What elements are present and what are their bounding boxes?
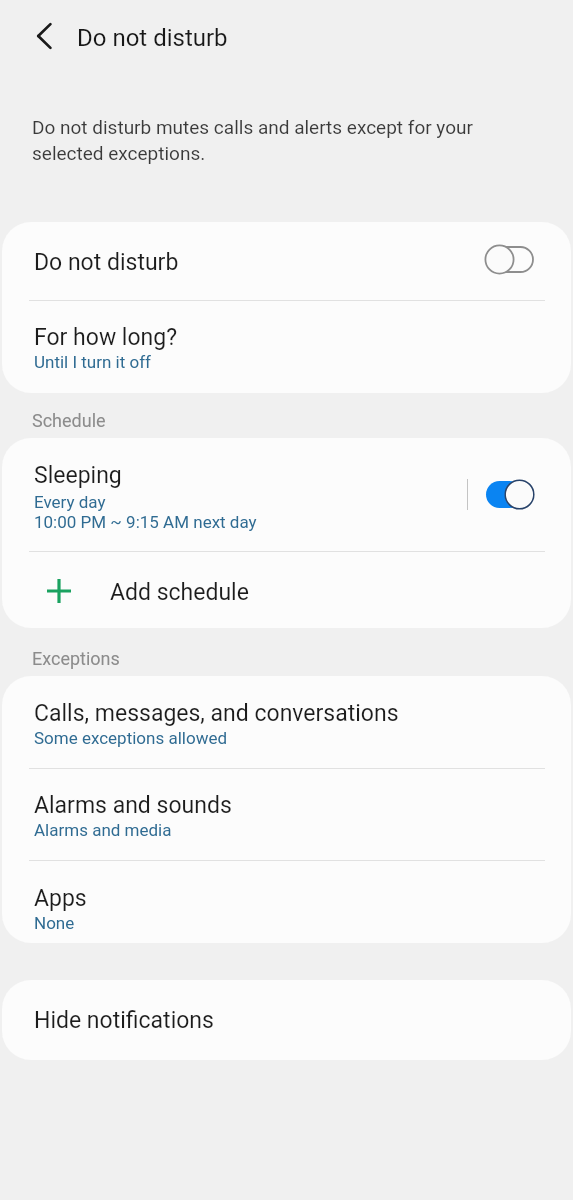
staticText: Sleeping [34, 462, 122, 489]
staticText: For how long? [34, 324, 178, 351]
button[interactable]: Calls, messages, and conversations [2, 676, 571, 768]
staticText: Hide notifications [34, 1007, 214, 1034]
staticText: Do not disturb mutes calls and alerts ex… [32, 116, 533, 164]
staticText: Do not disturb [77, 24, 228, 52]
button[interactable]: For how long? [2, 301, 571, 393]
staticText: Every day [34, 492, 106, 512]
staticText: Until I turn it off [34, 352, 152, 372]
button[interactable]: Do not disturb [2, 222, 571, 300]
staticText: Apps [34, 885, 87, 912]
button[interactable]: Hide notifications [2, 980, 571, 1060]
button[interactable]: Do not disturb, off [484, 244, 535, 275]
staticText: Do not disturb [34, 249, 179, 276]
button[interactable]: Sleeping schedule, on [484, 479, 535, 510]
button[interactable]: Sleeping [2, 438, 571, 551]
staticText: Alarms and sounds [34, 792, 232, 819]
staticText: Exceptions [32, 648, 120, 669]
staticText: Calls, messages, and conversations [34, 700, 399, 727]
button[interactable]: Apps [2, 861, 571, 943]
button[interactable]: Add schedule [2, 552, 571, 628]
button[interactable]: Alarms and sounds [2, 769, 571, 860]
staticText: Schedule [32, 410, 106, 431]
staticText: 10:00 PM ~ 9:15 AM next day [34, 512, 257, 532]
button[interactable]: Back [20, 12, 68, 60]
staticText: None [34, 913, 75, 933]
staticText: Alarms and media [34, 820, 172, 840]
staticText: Add schedule [110, 579, 249, 606]
staticText: Some exceptions allowed [34, 728, 228, 748]
